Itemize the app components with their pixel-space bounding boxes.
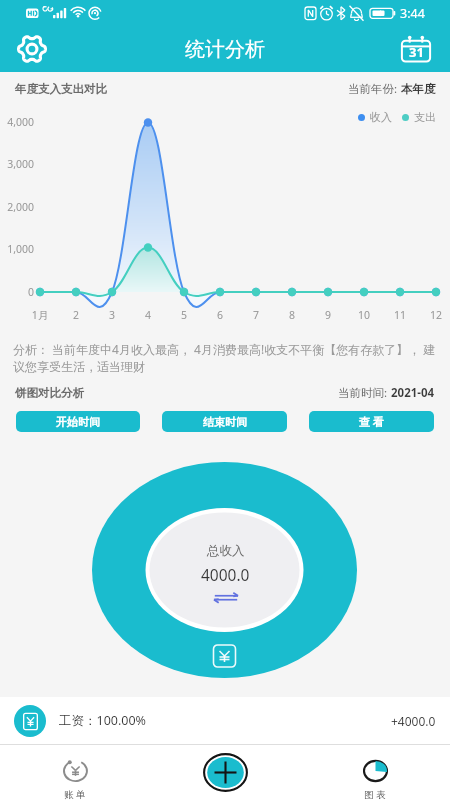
staticText: 结束时间: [203, 415, 247, 429]
button[interactable]: 结束时间: [162, 411, 287, 432]
staticText: 查 看: [359, 414, 384, 429]
staticText: 分析： 当前年度中4月收入最高， 4月消费最高!收支不平衡【您有存款了】， 建议…: [13, 341, 437, 374]
staticText: 当前年份:: [348, 81, 401, 97]
staticText: 支出: [414, 110, 436, 124]
staticText: 饼图对比分析: [15, 386, 84, 400]
staticText: 3: [94, 308, 130, 322]
staticText: 10: [346, 308, 382, 322]
button[interactable]: Add: [203, 753, 248, 792]
button[interactable]: 开始时间: [16, 411, 140, 432]
staticText: 6: [202, 308, 238, 322]
staticText: 当前时间:: [338, 385, 391, 401]
staticText: 年度支入支出对比: [15, 82, 107, 96]
staticText: 图 表: [364, 788, 386, 800]
staticText: 账 单: [64, 788, 86, 800]
staticText: 2021-04: [391, 385, 435, 401]
staticText: 4: [130, 308, 166, 322]
button[interactable]: Calendar: [396, 29, 436, 69]
button[interactable]: 账 单: [0, 744, 150, 800]
staticText: 9: [310, 308, 346, 322]
staticText: 统计分析: [185, 37, 265, 62]
staticText: 8: [274, 308, 310, 322]
staticText: 4000.0: [201, 564, 250, 585]
staticText: 本年度: [401, 82, 436, 96]
staticText: 总收入: [207, 543, 245, 559]
staticText: 收入: [370, 110, 392, 124]
staticText: 3:44: [400, 5, 425, 22]
button[interactable]: 查 看: [309, 411, 434, 432]
staticText: 3,000: [0, 157, 34, 171]
staticText: 0: [0, 285, 34, 299]
staticText: 11: [382, 308, 418, 322]
staticText: 31: [409, 43, 424, 61]
staticText: 开始时间: [56, 415, 100, 429]
staticText: +4000.0: [391, 713, 436, 729]
staticText: 5: [166, 308, 202, 322]
staticText: 2,000: [0, 200, 34, 214]
staticText: 1,000: [0, 242, 34, 256]
button[interactable]: Settings: [12, 29, 52, 69]
button[interactable]: 工资：100.00%: [0, 697, 450, 744]
staticText: 1月: [22, 308, 58, 322]
staticText: 工资：100.00%: [59, 712, 146, 729]
staticText: 12: [418, 308, 450, 322]
staticText: 7: [238, 308, 274, 322]
staticText: 2: [58, 308, 94, 322]
button[interactable]: 图 表: [300, 744, 450, 800]
staticText: 4,000: [0, 115, 34, 129]
